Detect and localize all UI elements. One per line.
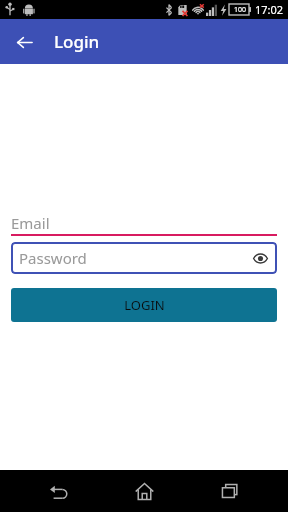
- button[interactable]: Recent apps: [202, 470, 258, 512]
- button[interactable]: Email: [11, 212, 277, 236]
- button[interactable]: Password: [11, 242, 277, 274]
- button[interactable]: Back: [6, 24, 42, 60]
- staticText: Login: [54, 30, 100, 53]
- button[interactable]: Back: [30, 470, 86, 512]
- staticText: LOGIN: [124, 296, 165, 314]
- staticText: 100: [234, 5, 247, 15]
- staticText: 17:02: [255, 2, 284, 17]
- staticText: Password: [19, 248, 87, 268]
- button[interactable]: Home: [116, 470, 172, 512]
- button[interactable]: Show password: [250, 248, 270, 268]
- staticText: Email: [11, 213, 50, 233]
- button[interactable]: LOGIN: [11, 288, 277, 322]
